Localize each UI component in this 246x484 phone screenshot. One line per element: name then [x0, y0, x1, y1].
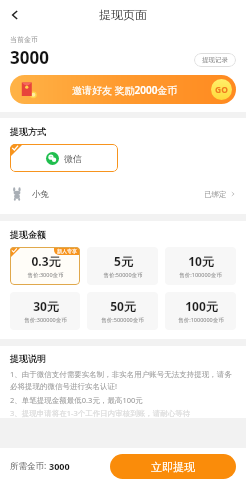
- staticText: 提现页面: [99, 7, 147, 22]
- staticText: 提现记录: [202, 56, 228, 64]
- staticText: 3000: [10, 46, 49, 69]
- staticText: 售价:3000金币: [27, 271, 64, 279]
- staticText: 0.3元: [31, 253, 61, 269]
- staticText: 50元: [110, 298, 136, 314]
- button[interactable]: 新人专享: [10, 247, 80, 285]
- staticText: 新人专享: [57, 248, 77, 254]
- staticText: GO: [215, 84, 228, 96]
- staticText: 已绑定: [204, 190, 227, 199]
- staticText: 售价:100000金币: [179, 271, 222, 279]
- staticText: 3000: [49, 460, 70, 472]
- button[interactable]: 小兔: [0, 182, 246, 206]
- staticText: 售价:1000000金币: [178, 316, 224, 324]
- staticText: 100元: [185, 298, 218, 314]
- staticText: 邀请好友 奖励2000金币: [72, 83, 178, 97]
- staticText: 2、单笔提现金额最低0.3元，最高100元: [10, 395, 143, 405]
- staticText: 1、由于微信支付需要实名制，非实名用户账号无法支持提现，请务必将提现的微信号进行…: [10, 369, 236, 392]
- staticText: 30元: [33, 298, 59, 314]
- staticText: 5元: [114, 253, 133, 269]
- staticText: 立即提现: [151, 460, 195, 474]
- button[interactable]: 微信: [10, 144, 118, 172]
- button[interactable]: 50元: [87, 292, 158, 330]
- staticText: 提现金额: [10, 229, 46, 240]
- button[interactable]: 30元: [10, 292, 80, 330]
- button[interactable]: 5元: [87, 247, 158, 285]
- staticText: 小兔: [32, 189, 49, 200]
- button[interactable]: 邀请好友 奖励2000金币: [10, 75, 236, 104]
- staticText: 所需金币:: [10, 460, 49, 472]
- staticText: 售价:50000金币: [103, 271, 143, 279]
- button[interactable]: Back: [0, 0, 29, 29]
- staticText: 当前金币: [10, 35, 38, 44]
- staticText: 售价:300000金币: [24, 316, 67, 324]
- staticText: 10元: [188, 253, 214, 269]
- staticText: 微信: [64, 153, 82, 164]
- staticText: 3、提现申请将在1-3个工作日内审核到账，请耐心等待: [10, 408, 191, 418]
- staticText: 提现方式: [10, 126, 46, 137]
- staticText: 提现说明: [10, 353, 46, 364]
- button[interactable]: 提现记录: [194, 53, 236, 67]
- button[interactable]: 10元: [165, 247, 236, 285]
- button[interactable]: 立即提现: [110, 454, 236, 479]
- button[interactable]: 100元: [165, 292, 236, 330]
- staticText: 售价:500000金币: [101, 316, 144, 324]
